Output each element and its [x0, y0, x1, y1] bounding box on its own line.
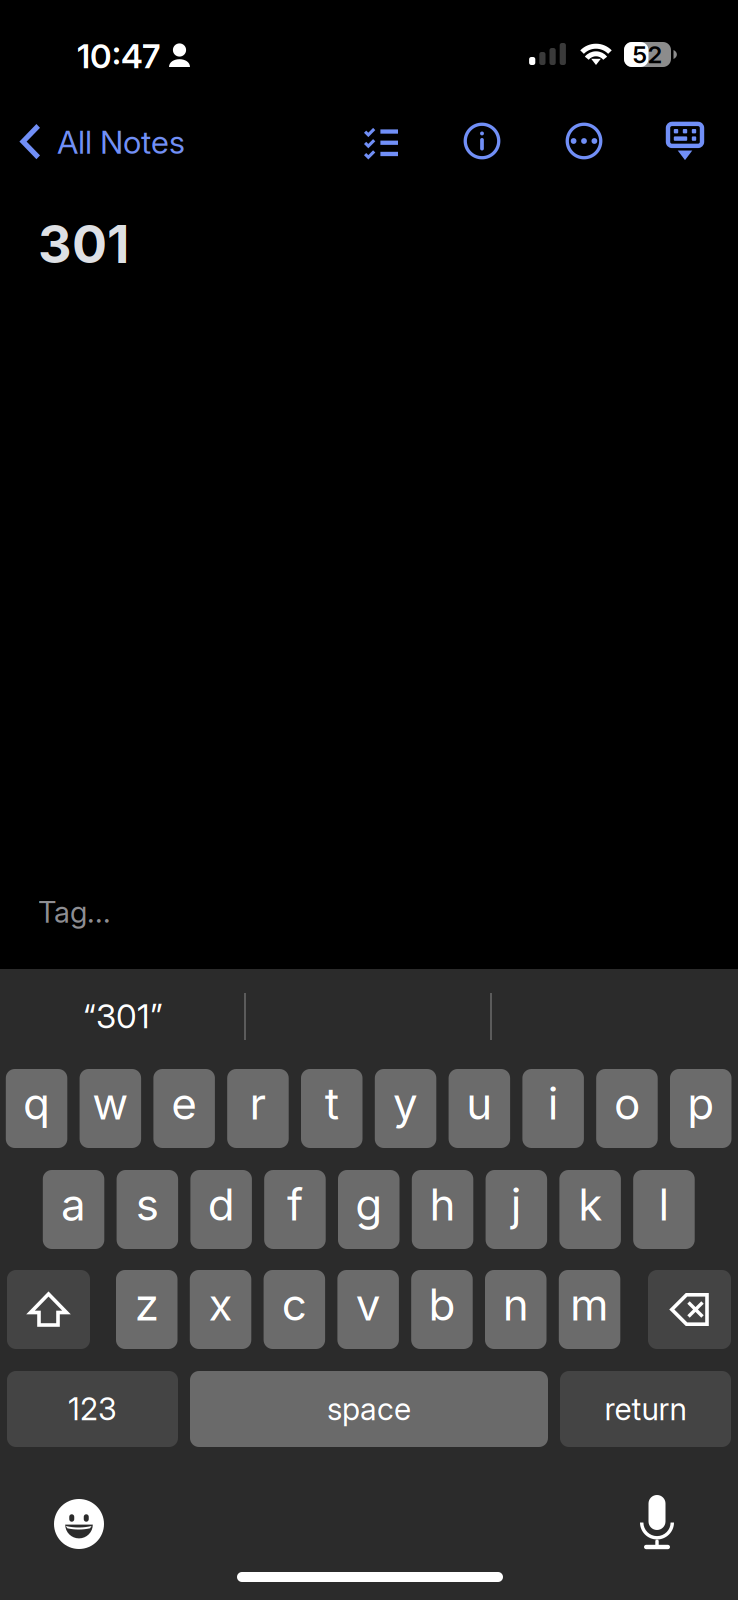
staticText: b	[428, 1278, 455, 1331]
button[interactable]: h	[412, 1170, 473, 1249]
button[interactable]: n	[485, 1270, 546, 1349]
staticText: w	[92, 1077, 128, 1130]
button[interactable]: o	[596, 1069, 658, 1148]
button[interactable]: s	[117, 1170, 178, 1249]
staticText: y	[393, 1077, 418, 1130]
button[interactable]: j	[486, 1170, 547, 1249]
button[interactable]: Emoji	[46, 1491, 112, 1557]
button[interactable]: space	[190, 1371, 548, 1447]
button[interactable]: a	[43, 1170, 104, 1249]
button[interactable]: p	[670, 1069, 731, 1148]
button[interactable]: e	[153, 1069, 215, 1148]
button[interactable]: r	[227, 1069, 289, 1148]
button[interactable]: l	[633, 1170, 695, 1249]
staticText: 10:47	[77, 36, 160, 76]
staticText: f	[287, 1178, 303, 1231]
button[interactable]: Dictation	[624, 1489, 690, 1555]
button[interactable]: Delete	[648, 1270, 731, 1349]
button[interactable]: m	[559, 1270, 620, 1349]
button[interactable]: 123	[7, 1371, 178, 1447]
button[interactable]: y	[375, 1069, 436, 1148]
button[interactable]: “301”	[0, 982, 246, 1050]
staticText: z	[135, 1278, 159, 1331]
button[interactable]: f	[264, 1170, 326, 1249]
button[interactable]: x	[190, 1270, 251, 1349]
staticText: e	[171, 1077, 197, 1130]
staticText: h	[430, 1178, 456, 1231]
staticText: g	[355, 1178, 382, 1231]
staticText: return	[604, 1390, 686, 1427]
button[interactable]: Note Info	[454, 113, 510, 169]
staticText: p	[687, 1077, 714, 1130]
staticText: t	[325, 1077, 339, 1130]
button[interactable]: q	[6, 1069, 67, 1148]
staticText: Tag...	[38, 894, 111, 930]
staticText: l	[658, 1178, 669, 1231]
staticText: q	[23, 1077, 50, 1130]
button[interactable]: d	[190, 1170, 252, 1249]
staticText: i	[548, 1077, 559, 1130]
button[interactable]: v	[337, 1270, 399, 1349]
button[interactable]: t	[301, 1069, 362, 1148]
staticText: j	[511, 1178, 522, 1231]
staticText: s	[136, 1178, 159, 1231]
button[interactable]: z	[116, 1270, 177, 1349]
button[interactable]: g	[338, 1170, 399, 1249]
staticText: k	[578, 1178, 602, 1231]
staticText: a	[61, 1178, 86, 1231]
button[interactable]: Tag...	[38, 890, 238, 934]
staticText: x	[209, 1278, 233, 1331]
staticText: v	[356, 1278, 381, 1331]
button[interactable]: More	[556, 113, 612, 169]
staticText: 301	[38, 212, 129, 275]
staticText: c	[282, 1278, 307, 1331]
staticText: d	[208, 1178, 235, 1231]
button[interactable]: b	[411, 1270, 473, 1349]
button[interactable]: Checklist	[353, 113, 409, 169]
staticText: n	[503, 1278, 529, 1331]
button[interactable]: u	[449, 1069, 510, 1148]
staticText: r	[249, 1077, 266, 1130]
staticText: u	[466, 1077, 492, 1130]
button[interactable]: i	[522, 1069, 584, 1148]
button[interactable]: c	[264, 1270, 325, 1349]
button[interactable]: Shift	[7, 1270, 90, 1349]
staticText: space	[327, 1390, 411, 1427]
staticText: o	[614, 1077, 640, 1130]
staticText: 123	[68, 1390, 117, 1427]
staticText: 52	[632, 40, 662, 69]
button[interactable]: Hide Keyboard	[657, 113, 713, 169]
button[interactable]: All Notes	[18, 114, 228, 170]
staticText: m	[570, 1278, 609, 1331]
button[interactable]: k	[559, 1170, 621, 1249]
staticText: All Notes	[57, 123, 185, 161]
staticText: “301”	[83, 996, 163, 1036]
button[interactable]: w	[80, 1069, 141, 1148]
button[interactable]: return	[560, 1371, 731, 1447]
